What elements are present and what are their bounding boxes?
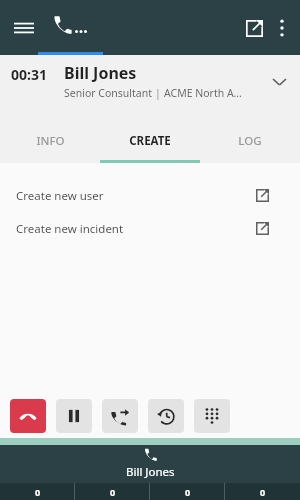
staticText: 0 [35,486,41,498]
button[interactable]: 0 [75,483,150,500]
staticText: Create new incident [16,221,124,237]
staticText: 0 [110,486,116,498]
button[interactable]: Menu [4,8,44,48]
staticText: 0 [260,486,266,498]
button[interactable]: Dialpad [194,399,230,433]
button[interactable]: 00:31 [0,55,300,118]
staticText: 0 [185,486,191,498]
button[interactable]: Bill Jones [0,445,300,483]
button[interactable]: End call [10,399,46,433]
button[interactable]: CREATE [100,118,200,163]
staticText: ACME North A… [164,86,242,100]
button[interactable]: 0 [150,483,225,500]
button[interactable]: 0 [0,483,75,500]
staticText: Bill Jones [64,62,137,84]
staticText: Bill Jones [126,464,175,480]
staticText: LOG [238,133,262,149]
button[interactable]: Transfer call [102,399,138,433]
button[interactable]: LOG [200,118,300,163]
button[interactable]: More options [266,12,298,44]
button[interactable]: 0 [225,483,300,500]
staticText: INFO [36,133,65,149]
button[interactable]: Expand [264,67,294,97]
staticText: Create new user [16,188,104,204]
staticText: | [155,86,164,100]
button[interactable]: Call history [148,399,184,433]
button[interactable]: Open in new window [237,11,271,45]
button[interactable]: Hold [56,399,92,433]
staticText: Senior Consultant [64,86,155,100]
staticText: CREATE [129,133,171,149]
staticText: 00:31 [11,65,47,84]
button[interactable]: Create new incident [0,212,300,245]
button[interactable]: Create new user [0,179,300,212]
button[interactable]: Calls [38,0,103,55]
button[interactable]: INFO [0,118,100,163]
